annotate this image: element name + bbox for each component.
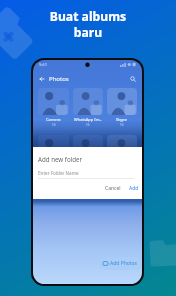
- button[interactable]: Cancel: [104, 184, 122, 193]
- staticText: Camera: [46, 117, 61, 122]
- staticText: WhatsApp Im..: [74, 117, 102, 122]
- staticText: Cancel: [105, 185, 121, 192]
- button[interactable]: Movies: [107, 135, 137, 174]
- staticText: 16: [52, 123, 56, 127]
- button[interactable]: Pictures: [73, 135, 103, 174]
- button[interactable]: Add Photos: [99, 257, 142, 270]
- button[interactable]: Search: [129, 75, 137, 83]
- staticText: Skype: [116, 117, 128, 122]
- button[interactable]: Back: [38, 75, 46, 83]
- staticText: Photos: [49, 75, 69, 83]
- staticText: Add new folder: [38, 155, 83, 163]
- button[interactable]: Camera: [38, 88, 69, 127]
- staticText: 16: [52, 170, 56, 174]
- button[interactable]: WhatsApp Im..: [73, 88, 103, 127]
- staticText: 9:41: [39, 62, 47, 67]
- button[interactable]: Download: [38, 135, 69, 174]
- staticText: Add Photos: [110, 260, 138, 267]
- staticText: Enter Folder Name: [38, 170, 79, 176]
- staticText: 16: [120, 123, 124, 127]
- button[interactable]: Skype: [107, 88, 137, 127]
- staticText: Add: [129, 185, 139, 192]
- button[interactable]: Add: [128, 184, 140, 193]
- staticText: Buat albums baru: [0, 8, 176, 40]
- staticText: 16: [86, 123, 90, 127]
